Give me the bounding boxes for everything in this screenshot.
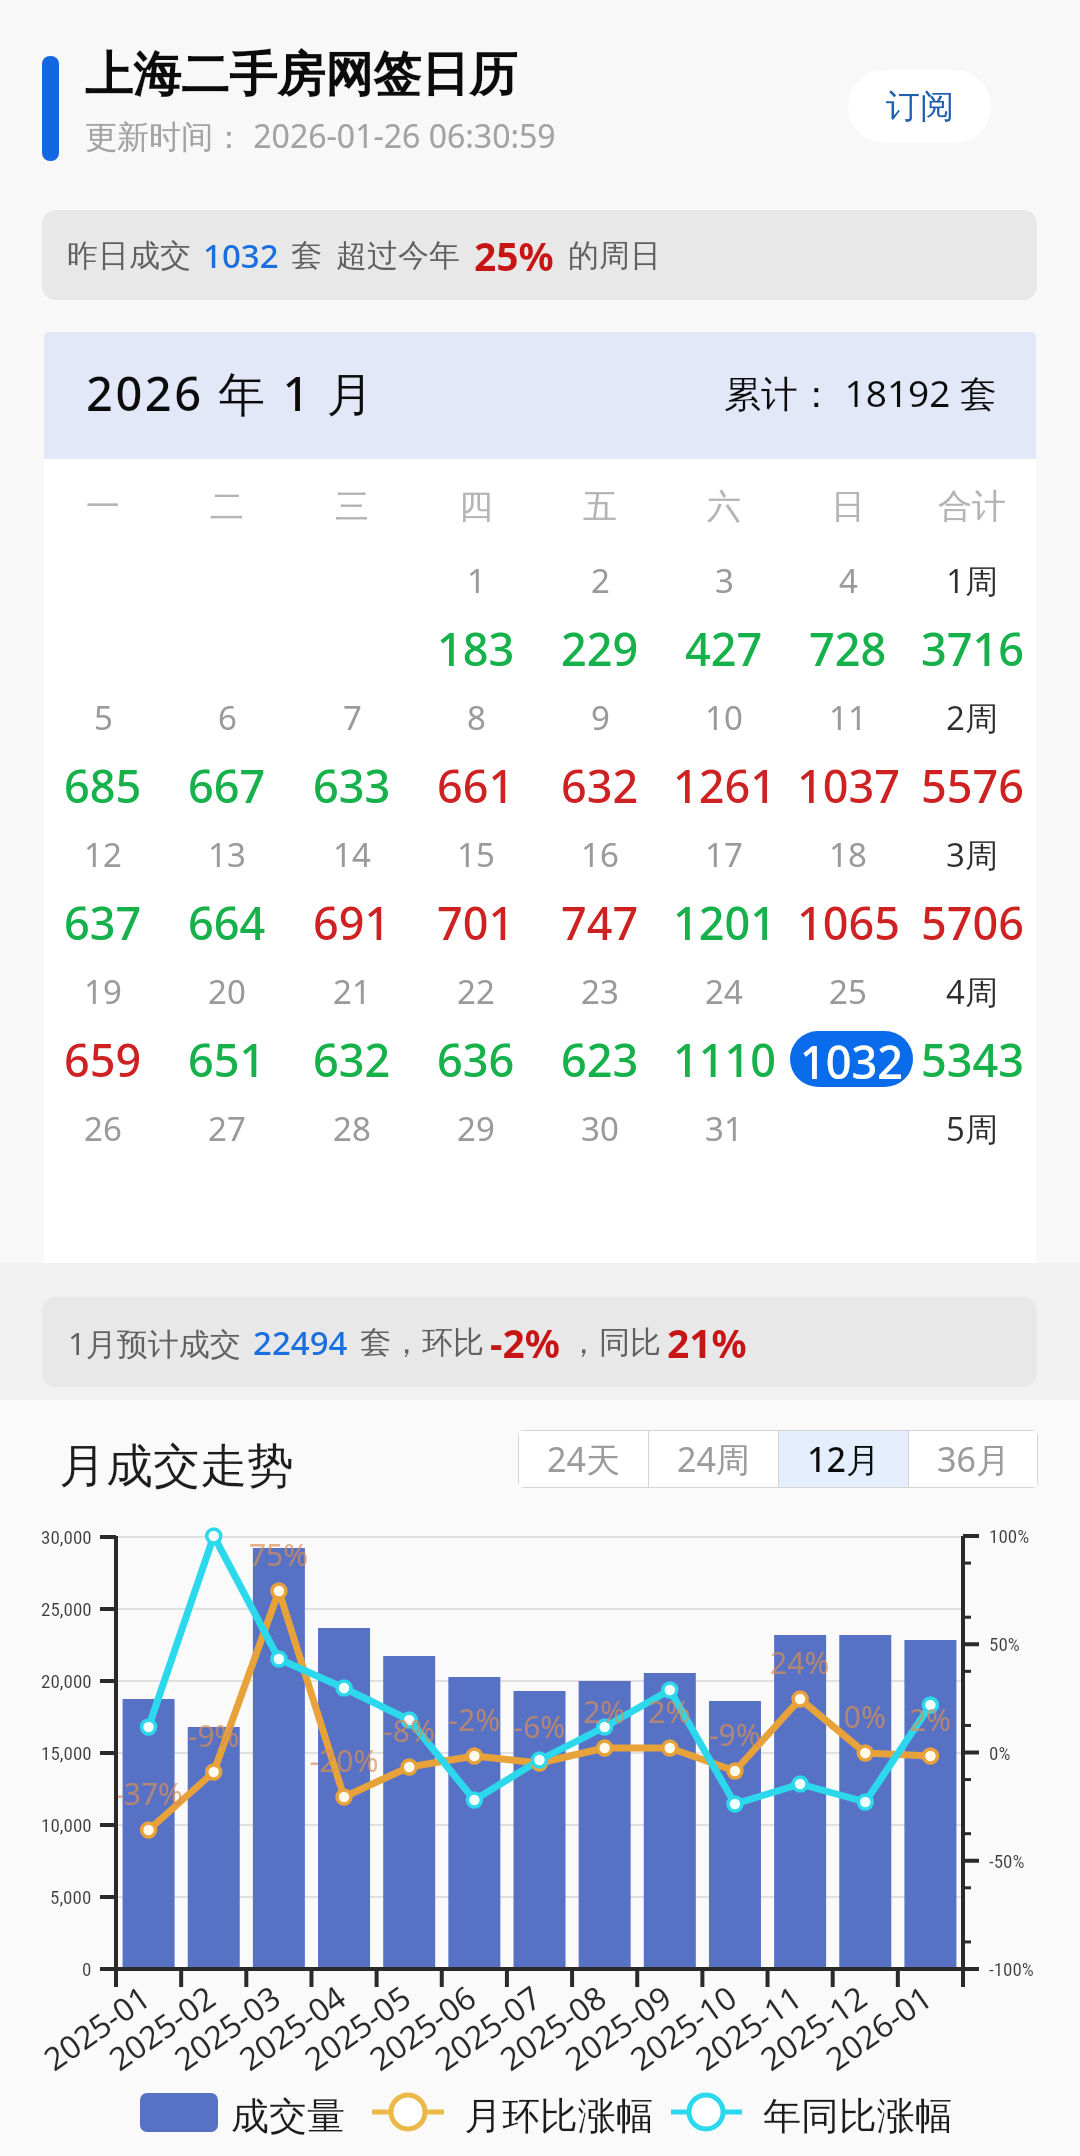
staticText: 1032 bbox=[800, 1031, 903, 1087]
staticText: ， bbox=[568, 1323, 599, 1362]
button[interactable]: 订阅 bbox=[848, 70, 991, 143]
staticText: 六 bbox=[707, 485, 741, 528]
staticText: 20 bbox=[208, 969, 246, 1014]
staticText: 3 bbox=[715, 558, 734, 603]
staticText: 环比 bbox=[422, 1323, 484, 1362]
staticText: 超过今年 bbox=[336, 236, 460, 275]
staticText: 636 bbox=[437, 1029, 515, 1090]
button[interactable]: 24天 bbox=[519, 1431, 648, 1487]
staticText: 6 bbox=[218, 695, 237, 740]
staticText: 更新时间： 2026-01-26 06:30:59 bbox=[85, 114, 556, 158]
staticText: 183 bbox=[437, 618, 515, 679]
staticText: 659 bbox=[64, 1029, 142, 1090]
staticText: 623 bbox=[561, 1029, 639, 1090]
button[interactable]: 36月 bbox=[909, 1431, 1037, 1487]
staticText: 12 bbox=[84, 832, 122, 877]
staticText: 上海二手房网签日历 bbox=[85, 45, 517, 105]
staticText: 17 bbox=[705, 832, 743, 877]
staticText: 36月 bbox=[937, 1436, 1010, 1482]
staticText: 1065 bbox=[797, 892, 900, 953]
staticText: 订阅 bbox=[886, 85, 954, 128]
staticText: 22494 bbox=[253, 1320, 348, 1365]
staticText: 1037 bbox=[797, 755, 900, 816]
staticText: 27 bbox=[208, 1106, 246, 1151]
staticText: 26 bbox=[84, 1106, 122, 1151]
staticText: 5576 bbox=[921, 755, 1024, 816]
staticText: 685 bbox=[64, 755, 142, 816]
staticText: 月环比涨幅 bbox=[464, 2092, 654, 2140]
staticText: 3716 bbox=[921, 618, 1024, 679]
staticText: 25% bbox=[474, 229, 554, 282]
staticText: 21% bbox=[667, 1316, 747, 1369]
staticText: 30 bbox=[581, 1106, 619, 1151]
staticText: 632 bbox=[313, 1029, 391, 1090]
staticText: 747 bbox=[561, 892, 639, 953]
staticText: 7 bbox=[343, 695, 362, 740]
staticText: 18 bbox=[829, 832, 867, 877]
staticText: 14 bbox=[333, 832, 371, 877]
staticText: 昨日成交 bbox=[67, 236, 191, 275]
staticText: 2 bbox=[591, 558, 610, 603]
staticText: 2周 bbox=[946, 695, 998, 740]
staticText: 累计： 18192 套 bbox=[724, 367, 998, 418]
staticText: 23 bbox=[581, 969, 619, 1014]
staticText: 667 bbox=[188, 755, 266, 816]
staticText: 1110 bbox=[673, 1029, 776, 1090]
staticText: 三 bbox=[335, 485, 369, 528]
staticText: 427 bbox=[685, 618, 763, 679]
staticText: 691 bbox=[313, 892, 391, 953]
staticText: 19 bbox=[84, 969, 122, 1014]
button[interactable]: 12月 bbox=[779, 1431, 908, 1487]
staticText: 10 bbox=[705, 695, 743, 740]
staticText: 日 bbox=[831, 485, 865, 528]
staticText: 套 bbox=[291, 236, 322, 275]
staticText: 1032 bbox=[203, 233, 279, 278]
staticText: 29 bbox=[457, 1106, 495, 1151]
staticText: 5706 bbox=[921, 892, 1024, 953]
staticText: 651 bbox=[188, 1029, 266, 1090]
staticText: 632 bbox=[561, 755, 639, 816]
staticText: 661 bbox=[437, 755, 515, 816]
staticText: 1261 bbox=[673, 755, 776, 816]
staticText: 3周 bbox=[946, 832, 998, 877]
staticText: 月成交走势 bbox=[59, 1437, 294, 1496]
staticText: 664 bbox=[188, 892, 266, 953]
staticText: 1201 bbox=[673, 892, 776, 953]
staticText: 701 bbox=[437, 892, 515, 953]
staticText: 1月预计成交 bbox=[68, 1322, 241, 1364]
staticText: 1 bbox=[467, 558, 486, 603]
staticText: 633 bbox=[313, 755, 391, 816]
staticText: 4周 bbox=[946, 969, 998, 1014]
staticText: 15 bbox=[457, 832, 495, 877]
staticText: 年同比涨幅 bbox=[763, 2092, 953, 2140]
staticText: 25 bbox=[829, 969, 867, 1014]
staticText: 2026 年 1 月 bbox=[86, 361, 377, 425]
button[interactable]: 1032 bbox=[790, 1031, 913, 1087]
staticText: 31 bbox=[705, 1106, 743, 1151]
staticText: 一 bbox=[86, 485, 120, 528]
staticText: 229 bbox=[561, 618, 639, 679]
staticText: 22 bbox=[457, 969, 495, 1014]
staticText: 28 bbox=[333, 1106, 371, 1151]
staticText: 四 bbox=[459, 485, 493, 528]
staticText: 套， bbox=[360, 1323, 422, 1362]
staticText: 11 bbox=[829, 695, 867, 740]
staticText: 16 bbox=[581, 832, 619, 877]
staticText: 二 bbox=[210, 485, 244, 528]
staticText: 24周 bbox=[677, 1436, 750, 1482]
staticText: 24天 bbox=[547, 1436, 620, 1482]
staticText: 合计 bbox=[938, 485, 1006, 528]
staticText: 五 bbox=[583, 485, 617, 528]
staticText: 13 bbox=[208, 832, 246, 877]
staticText: 同比 bbox=[599, 1323, 661, 1362]
button[interactable]: 24周 bbox=[649, 1431, 778, 1487]
staticText: 5周 bbox=[946, 1106, 998, 1151]
staticText: 24 bbox=[705, 969, 743, 1014]
staticText: 728 bbox=[809, 618, 887, 679]
staticText: 5 bbox=[94, 695, 113, 740]
staticText: 8 bbox=[467, 695, 486, 740]
staticText: 12月 bbox=[807, 1436, 880, 1482]
staticText: 637 bbox=[64, 892, 142, 953]
staticText: 成交量 bbox=[231, 2092, 345, 2140]
staticText: -2% bbox=[490, 1316, 560, 1369]
